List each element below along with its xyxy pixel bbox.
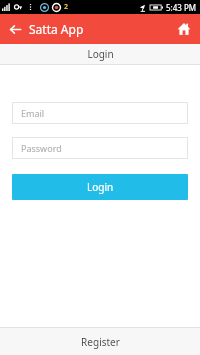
staticText: 2 xyxy=(64,2,69,12)
staticText: Login xyxy=(87,47,114,61)
button[interactable]: Login xyxy=(12,174,188,200)
staticText: Password xyxy=(21,142,62,154)
staticText: Register xyxy=(81,335,120,349)
button[interactable]: Email xyxy=(12,102,188,124)
button[interactable]: Password xyxy=(12,137,188,159)
staticText: Email xyxy=(21,107,45,119)
button[interactable]: Home xyxy=(173,18,195,40)
staticText: Satta App xyxy=(29,21,84,37)
staticText: 5:43 PM xyxy=(166,2,197,13)
button[interactable]: Back xyxy=(4,18,26,40)
button[interactable]: Register xyxy=(0,328,200,355)
staticText: Login xyxy=(87,180,114,194)
